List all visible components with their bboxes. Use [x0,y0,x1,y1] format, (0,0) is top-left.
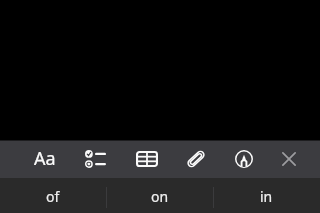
button[interactable]: in [213,178,320,213]
button[interactable]: Draw [222,141,266,178]
button[interactable]: Attach file [174,141,218,178]
staticText: Aa [34,146,56,171]
button[interactable]: Close [267,141,311,178]
button[interactable]: Checklist [73,141,117,178]
button[interactable]: Text formatting [23,141,67,178]
button[interactable]: on [106,178,213,213]
staticText: in [260,187,273,206]
button[interactable]: of [0,178,106,213]
staticText: on [151,187,169,206]
staticText: of [46,187,60,206]
button[interactable]: Table [125,141,169,178]
